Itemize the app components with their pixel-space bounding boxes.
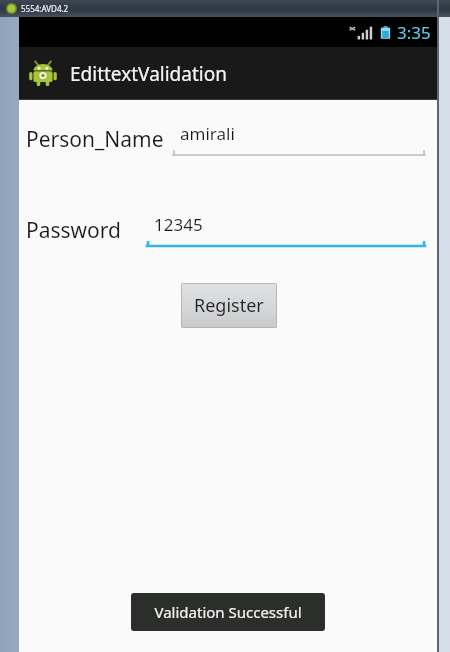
staticText: Person_Name <box>26 125 164 154</box>
button[interactable]: 12345 <box>130 213 425 248</box>
staticText: EdittextValidation <box>70 61 227 87</box>
staticText: 3:35 <box>397 21 431 44</box>
staticText: Register <box>194 293 264 318</box>
button[interactable]: amirali <box>173 122 425 157</box>
staticText: amirali <box>180 122 235 145</box>
staticText: 5554:AVD4.2 <box>21 3 69 14</box>
button[interactable]: Register <box>181 283 277 328</box>
staticText: Password <box>26 216 121 245</box>
staticText: Validation Successful <box>154 602 302 622</box>
staticText: 12345 <box>154 213 203 236</box>
